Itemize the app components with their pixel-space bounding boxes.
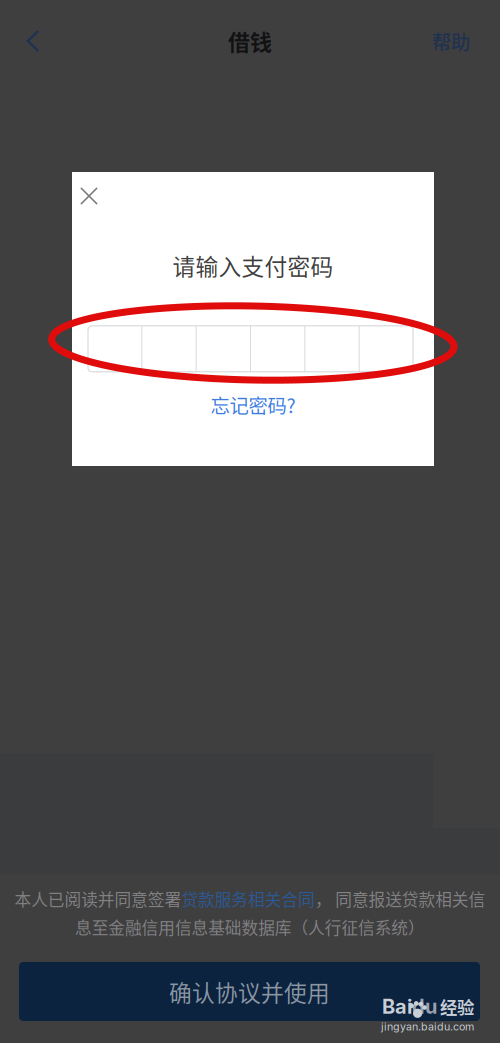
staticText: jingyan.baidu.com — [381, 1020, 474, 1033]
staticText: 请输入支付密码 — [172, 249, 333, 282]
staticText: 本人已阅读并同意签署 — [14, 887, 181, 911]
staticText: Bai — [382, 994, 412, 1019]
button[interactable]: 确认协议并使用 — [19, 962, 480, 1021]
staticText: 确认协议并使用 — [169, 975, 330, 1008]
staticText: 息至金融信用信息基础数据库（人行征信系统） — [75, 915, 425, 939]
staticText: du — [412, 994, 437, 1019]
button[interactable]: Back — [0, 19, 66, 63]
staticText: 贷款服务相关合同 — [181, 887, 315, 911]
button[interactable]: 贷款服务相关合同 — [181, 887, 315, 911]
button[interactable]: Close — [72, 179, 106, 213]
button[interactable]: 忘记密码? — [200, 390, 305, 420]
button[interactable]: 帮助 — [421, 19, 481, 63]
staticText: 借钱 — [228, 25, 272, 57]
staticText: 忘记密码? — [210, 391, 295, 419]
staticText: ， 同意报送贷款相关信 — [315, 887, 485, 911]
staticText: 帮助 — [432, 27, 470, 55]
staticText: 经验 — [440, 994, 474, 1019]
